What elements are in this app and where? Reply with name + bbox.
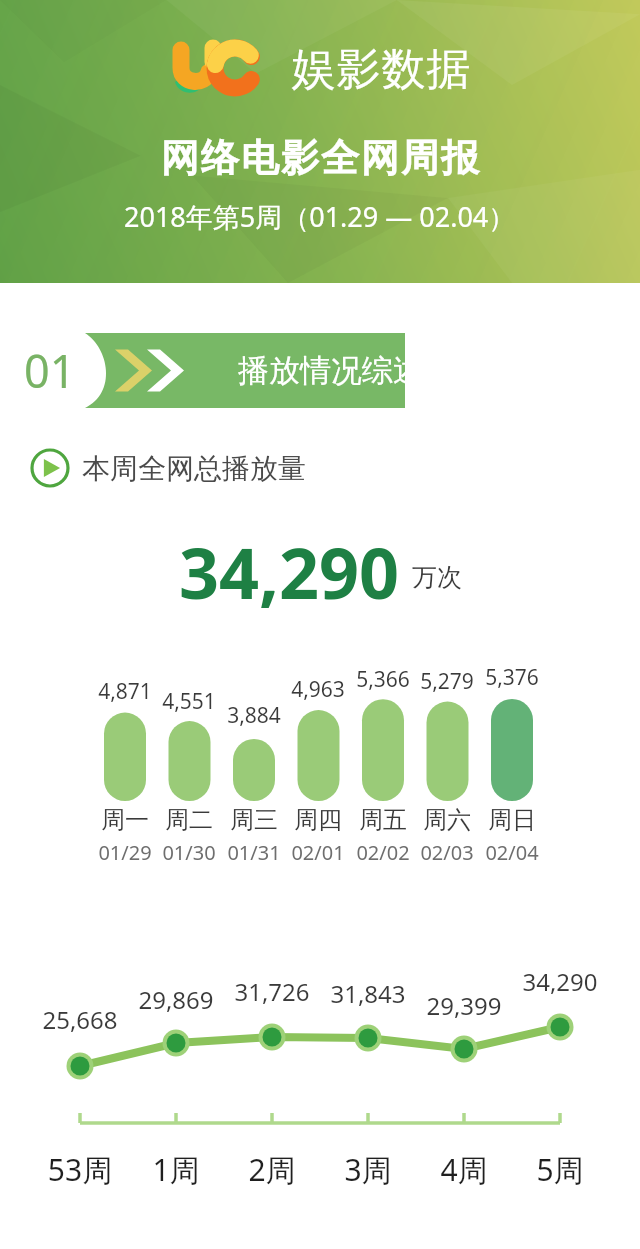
- staticText: 5周: [505, 1149, 615, 1190]
- staticText: 01/30: [149, 839, 229, 866]
- staticText: 万次: [412, 562, 462, 593]
- button[interactable]: 娱影数据 logo: [169, 38, 471, 100]
- staticText: 周三: [214, 805, 294, 835]
- staticText: 01/29: [85, 839, 165, 866]
- staticText: 5,279: [407, 667, 487, 696]
- staticText: 29,399: [409, 989, 519, 1022]
- staticText: 4周: [409, 1149, 519, 1190]
- staticText: 周五: [343, 805, 423, 835]
- staticText: 02/02: [343, 839, 423, 866]
- staticText: 周四: [278, 805, 358, 835]
- staticText: 3,884: [214, 701, 294, 730]
- staticText: 34,290: [179, 524, 400, 619]
- staticText: 5,366: [343, 665, 423, 694]
- button[interactable]: 01: [0, 332, 640, 408]
- other: 娱影数据 logo: [169, 38, 279, 100]
- staticText: 02/01: [278, 839, 358, 866]
- staticText: 播放情况综述: [238, 351, 424, 390]
- staticText: 周一: [85, 805, 165, 835]
- staticText: 本周全网总播放量: [82, 451, 306, 486]
- staticText: 25,668: [25, 1003, 135, 1036]
- staticText: 53周: [25, 1149, 135, 1190]
- staticText: 周六: [407, 805, 487, 835]
- staticText: 01: [24, 340, 76, 401]
- staticText: 2周: [217, 1149, 327, 1190]
- staticText: 31,843: [313, 977, 423, 1010]
- staticText: 34,290: [505, 965, 615, 998]
- staticText: 2018年第5周（01.29 — 02.04）: [124, 198, 516, 235]
- staticText: 02/04: [472, 839, 552, 866]
- button[interactable]: 本周全网总播放量: [30, 448, 306, 488]
- staticText: 4,963: [278, 675, 358, 704]
- staticText: 29,869: [121, 983, 231, 1016]
- staticText: 周二: [149, 805, 229, 835]
- staticText: 周日: [472, 805, 552, 835]
- staticText: 3周: [313, 1149, 423, 1190]
- staticText: 5,376: [472, 663, 552, 692]
- staticText: 1周: [121, 1149, 231, 1190]
- staticText: 01/31: [214, 839, 294, 866]
- staticText: 娱影数据: [291, 42, 471, 97]
- staticText: 4,551: [149, 687, 229, 716]
- staticText: 31,726: [217, 975, 327, 1008]
- staticText: 02/03: [407, 839, 487, 866]
- staticText: 网络电影全网周报: [160, 134, 480, 182]
- staticText: 4,871: [85, 677, 165, 706]
